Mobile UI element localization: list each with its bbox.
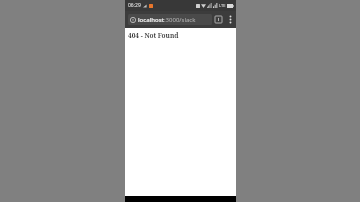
staticText: :3000/slack: [164, 16, 196, 24]
staticText: 404 - Not Found: [128, 31, 179, 40]
staticText: localhost: [138, 16, 164, 24]
staticText: LTE: [219, 3, 226, 8]
button[interactable]: localhost: [128, 14, 212, 25]
staticText: 06:29: [128, 2, 141, 9]
button[interactable]: Tabs: [212, 11, 225, 28]
button[interactable]: More options: [225, 11, 236, 28]
